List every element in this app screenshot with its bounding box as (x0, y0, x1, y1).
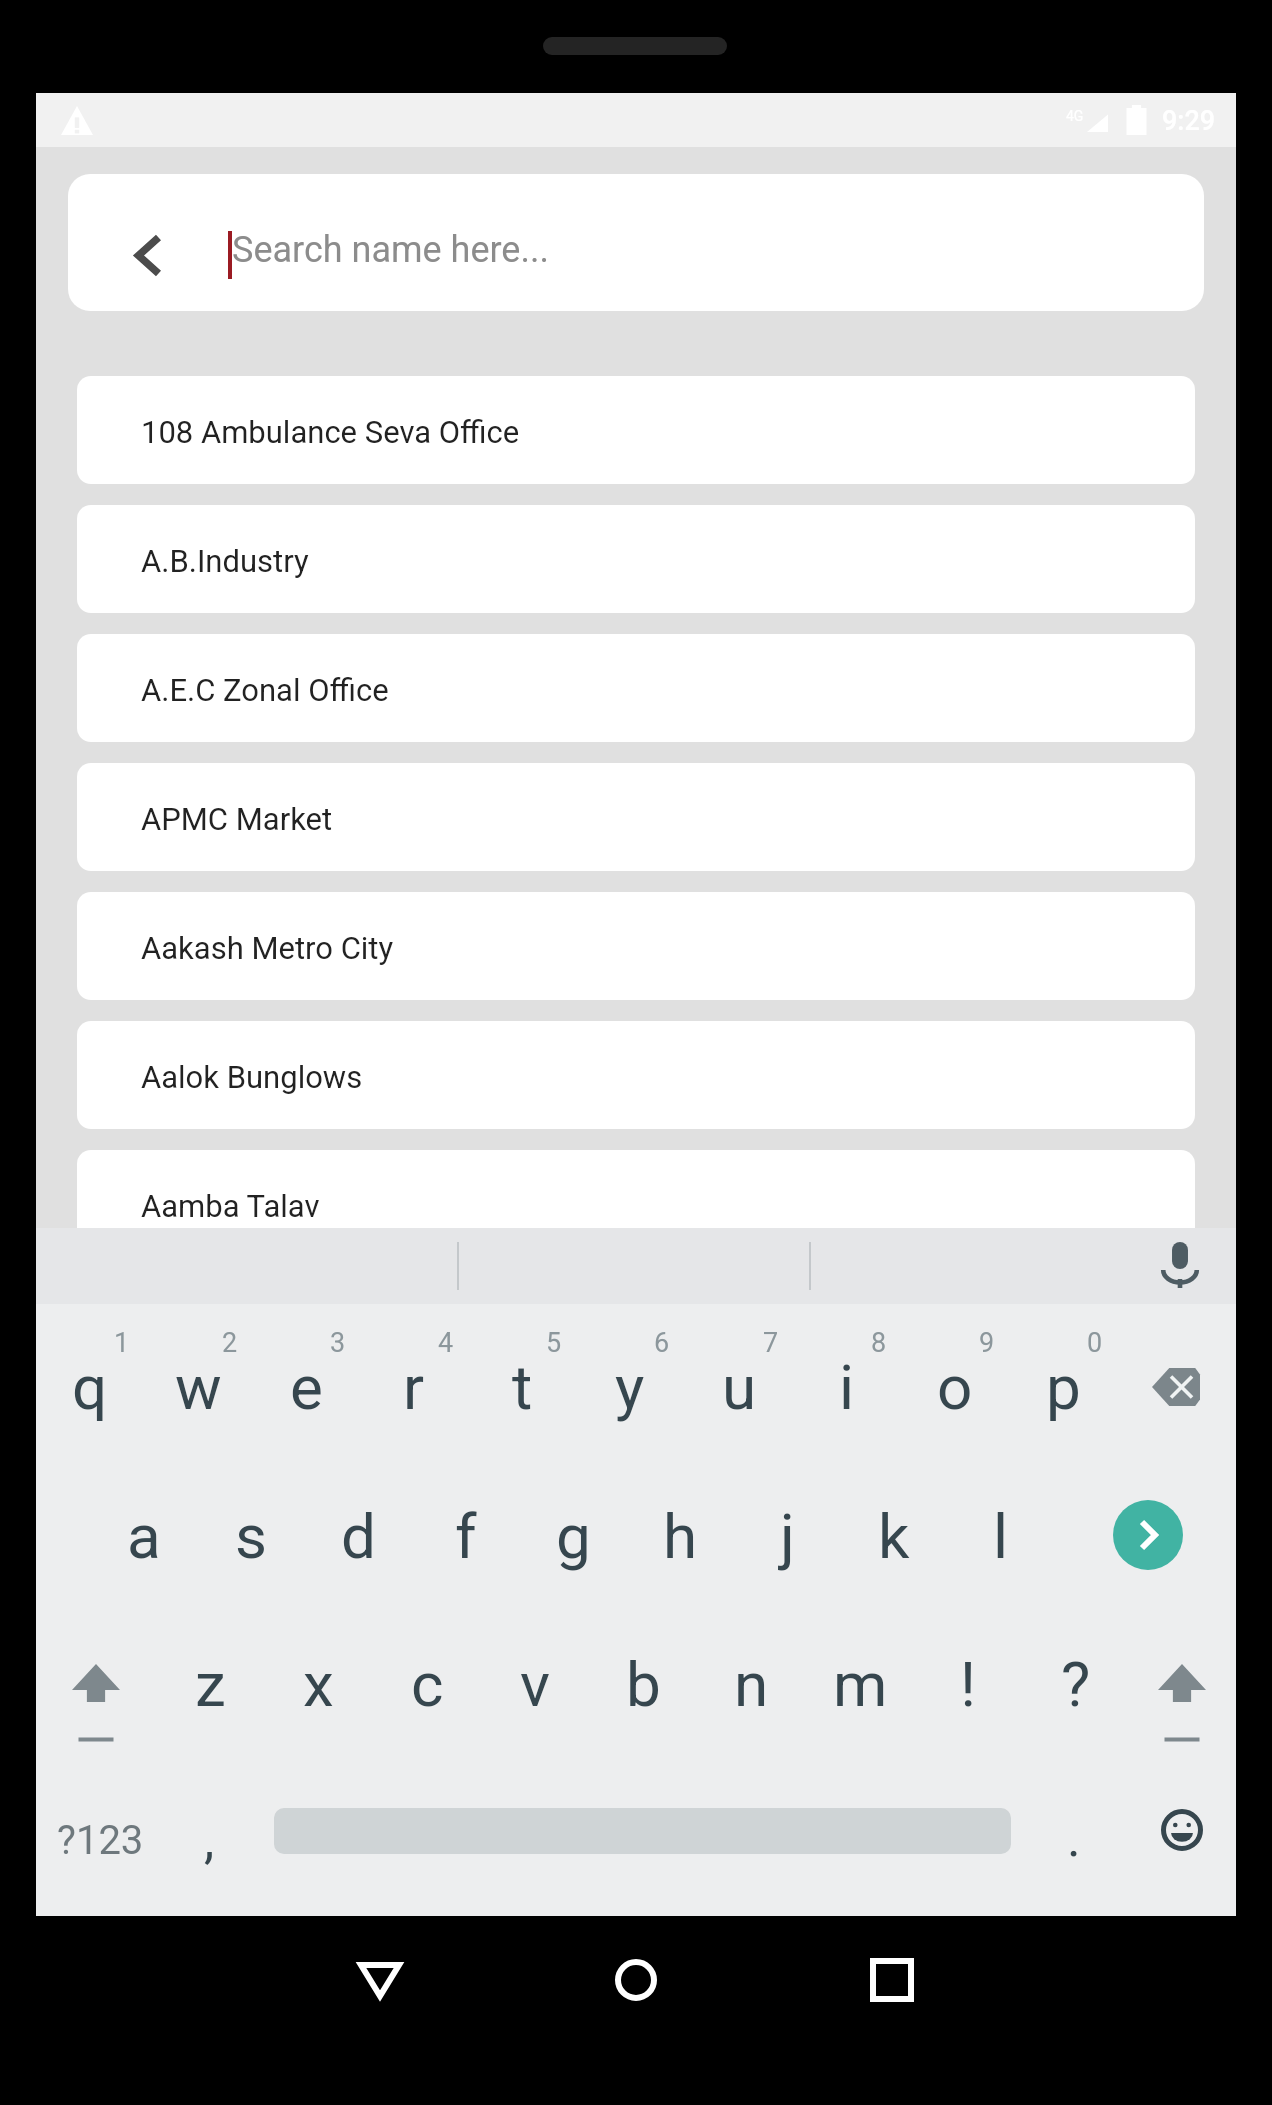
button[interactable]: Search (1093, 1473, 1203, 1597)
button[interactable]: ! (913, 1648, 1023, 1729)
staticText: f (455, 1500, 477, 1573)
staticText: 9 (979, 1327, 995, 1359)
button[interactable]: j (732, 1500, 842, 1581)
staticText: 5 (546, 1327, 562, 1359)
button[interactable]: q (35, 1351, 145, 1432)
button[interactable]: Back (120, 223, 176, 287)
button[interactable]: Back (330, 1940, 430, 2020)
staticText: 3 (330, 1327, 346, 1359)
button[interactable]: r (359, 1351, 469, 1432)
staticText: l (993, 1500, 1009, 1573)
staticText: g (556, 1500, 591, 1573)
button[interactable]: s (196, 1500, 306, 1581)
button[interactable]: ? (1021, 1648, 1131, 1729)
staticText: 7 (763, 1327, 779, 1359)
staticText: w (175, 1351, 222, 1424)
button[interactable]: b (588, 1648, 698, 1729)
staticText: m (833, 1648, 888, 1721)
button[interactable]: z (155, 1648, 265, 1729)
staticText: Aalok Bunglows (141, 1059, 363, 1095)
button[interactable]: u (684, 1351, 794, 1432)
button[interactable]: Aalok Bunglows (77, 1021, 1195, 1129)
staticText: e (290, 1351, 323, 1424)
button[interactable]: k (839, 1500, 949, 1581)
button[interactable]: , (154, 1810, 264, 1878)
button[interactable] (274, 1796, 1011, 1866)
staticText: 108 Ambulance Seva Office (141, 414, 520, 450)
button[interactable]: Home (586, 1940, 686, 2020)
button[interactable]: Back (68, 174, 1204, 311)
button[interactable]: Recents (842, 1940, 942, 2020)
button[interactable]: n (696, 1648, 806, 1729)
button[interactable]: A.B.Industry (77, 505, 1195, 613)
staticText: Aakash Metro City (141, 930, 394, 966)
staticText: 0 (1087, 1327, 1103, 1359)
button[interactable]: . (1019, 1808, 1129, 1876)
staticText: s (235, 1500, 267, 1573)
staticText: Search name here... (232, 229, 549, 271)
button[interactable]: g (518, 1500, 628, 1581)
button[interactable]: 6 (607, 1327, 717, 1362)
staticText: n (734, 1648, 769, 1721)
staticText: r (403, 1351, 425, 1424)
button[interactable]: w (143, 1351, 253, 1432)
button[interactable]: a (89, 1500, 199, 1581)
button[interactable]: 1 (67, 1327, 177, 1362)
button[interactable]: Emoji (1127, 1768, 1237, 1892)
button[interactable]: 3 (283, 1327, 393, 1362)
staticText: ?123 (57, 1817, 144, 1864)
staticText: d (341, 1500, 376, 1573)
button[interactable]: p (1008, 1351, 1118, 1432)
button[interactable]: 5 (499, 1327, 609, 1362)
button[interactable]: 9 (932, 1327, 1042, 1362)
staticText: a (127, 1500, 161, 1573)
button[interactable]: Aakash Metro City (77, 892, 1195, 1000)
staticText: 1 (114, 1327, 130, 1359)
button[interactable]: x (263, 1648, 373, 1729)
button[interactable]: 4 (391, 1327, 501, 1362)
button[interactable]: Backspace (1121, 1325, 1231, 1449)
button[interactable]: l (946, 1500, 1056, 1581)
button[interactable]: c (372, 1648, 482, 1729)
button[interactable]: y (575, 1351, 685, 1432)
button[interactable]: f (411, 1500, 521, 1581)
staticText: h (663, 1500, 698, 1573)
staticText: z (195, 1648, 226, 1721)
button[interactable]: t (467, 1351, 577, 1432)
button[interactable]: Voice input (1149, 1232, 1211, 1300)
button[interactable]: 8 (824, 1327, 934, 1362)
button[interactable]: h (625, 1500, 735, 1581)
staticText: b (626, 1648, 661, 1721)
staticText: 6 (654, 1327, 670, 1359)
staticText: 9:29 (1162, 105, 1216, 137)
button[interactable]: d (303, 1500, 413, 1581)
staticText: ? (1061, 1648, 1091, 1721)
button[interactable]: o (900, 1351, 1010, 1432)
button[interactable]: m (805, 1648, 915, 1729)
button[interactable]: 108 Ambulance Seva Office (77, 376, 1195, 484)
button[interactable]: ?123 (56, 1780, 206, 1916)
staticText: 4 (438, 1327, 454, 1359)
button[interactable]: Shift (41, 1641, 151, 1765)
staticText: y (615, 1351, 645, 1424)
button[interactable]: 2 (175, 1327, 285, 1362)
button[interactable]: v (480, 1648, 590, 1729)
staticText: ! (960, 1648, 976, 1721)
staticText: 4G (1066, 108, 1084, 124)
staticText: 8 (871, 1327, 887, 1359)
button[interactable]: e (251, 1351, 361, 1432)
staticText: A.E.C Zonal Office (141, 672, 389, 708)
staticText: , (204, 1810, 215, 1871)
staticText: p (1046, 1351, 1081, 1424)
button[interactable]: 7 (716, 1327, 826, 1362)
staticText: k (878, 1500, 910, 1573)
staticText: c (411, 1648, 444, 1721)
button[interactable]: A.E.C Zonal Office (77, 634, 1195, 742)
staticText: j (780, 1500, 795, 1573)
button[interactable]: APMC Market (77, 763, 1195, 871)
staticText: APMC Market (141, 801, 333, 837)
button[interactable]: i (792, 1351, 902, 1432)
button[interactable]: 0 (1040, 1327, 1150, 1362)
button[interactable]: Aamba Talav (77, 1150, 1195, 1258)
button[interactable]: Shift (1127, 1641, 1237, 1765)
